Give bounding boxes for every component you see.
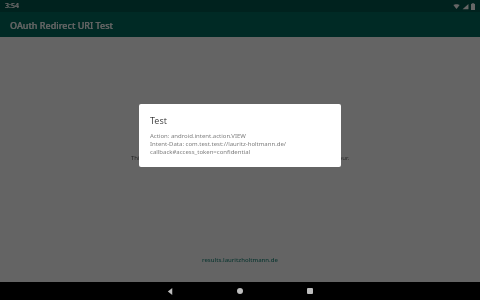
staticText: Action: android.intent.action.VIEW — [150, 132, 246, 140]
staticText: 3:54 — [5, 1, 19, 11]
staticText: OAuth Redirect URI Test — [10, 19, 113, 31]
button[interactable]: Home — [205, 282, 275, 300]
button[interactable]: Back — [135, 282, 205, 300]
staticText: Intent-Data: com.test.test://lauritz-hol… — [150, 140, 330, 156]
staticText: This is a test page to demonstrate the O… — [24, 154, 456, 162]
button[interactable]: Recent apps — [275, 282, 345, 300]
staticText: Test — [150, 114, 168, 126]
button[interactable]: results.lauritzholtmann.de — [202, 256, 278, 264]
